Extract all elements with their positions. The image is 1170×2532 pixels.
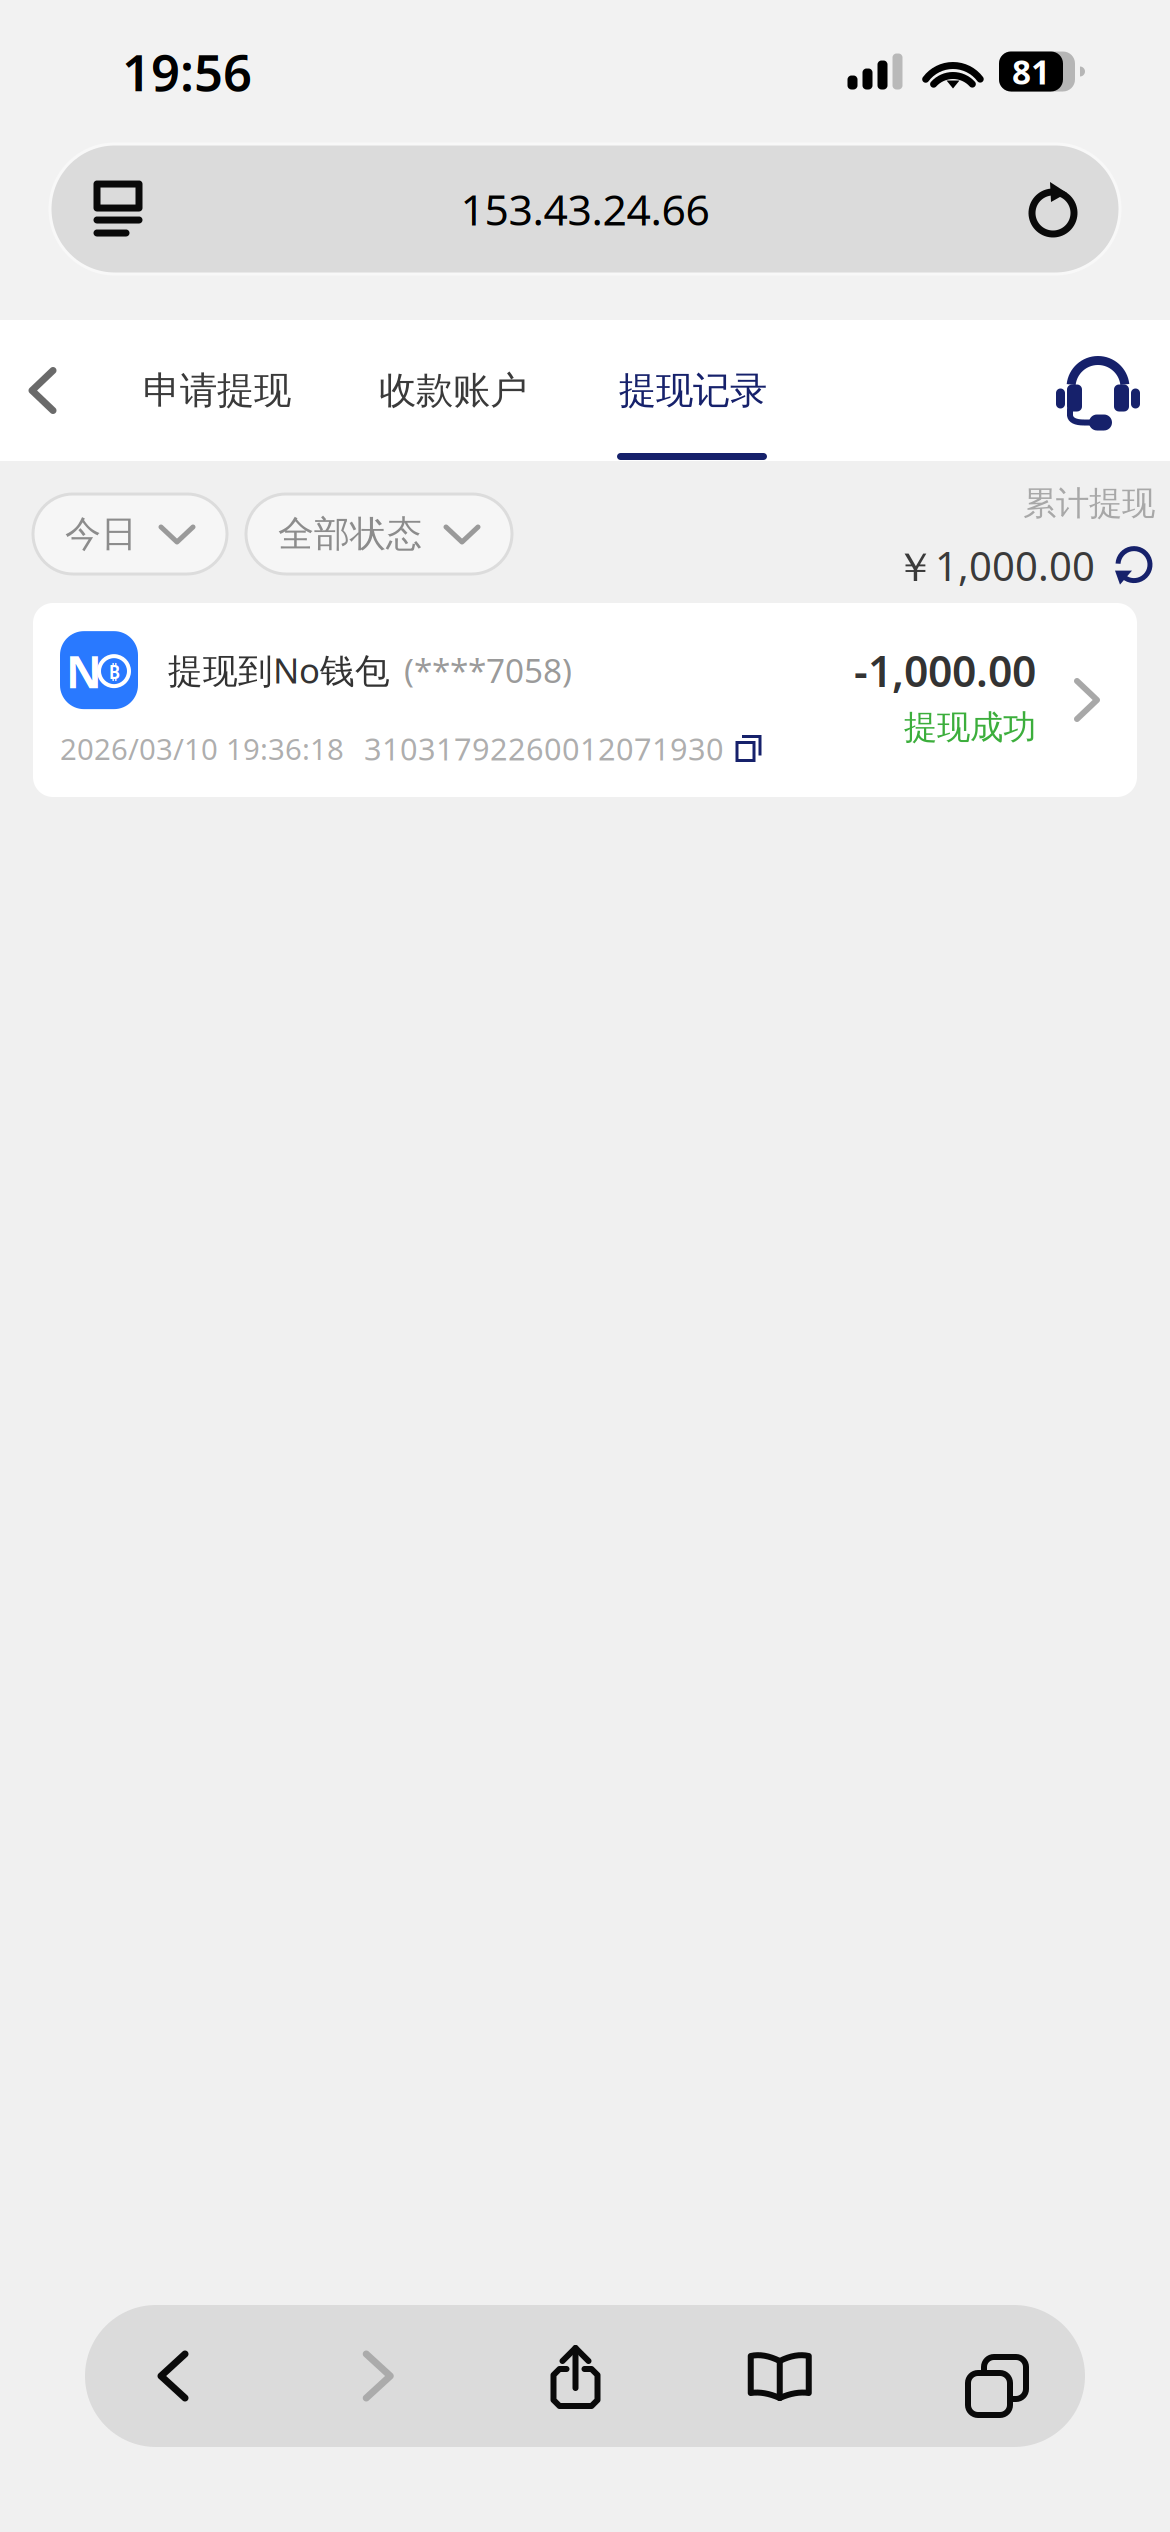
staticText: 申请提现 — [143, 368, 291, 413]
button[interactable]: Tabs — [956, 2345, 1018, 2407]
staticText: 收款账户 — [379, 368, 527, 413]
button[interactable]: Bookmarks — [745, 2348, 815, 2404]
button[interactable]: Back — [0, 321, 143, 459]
button[interactable]: 提现记录 — [619, 328, 767, 453]
staticText: 19:56 — [122, 38, 252, 105]
staticText: 31031792260012071930 — [364, 728, 724, 769]
button[interactable]: Address — [0, 144, 1170, 321]
staticText: 提现到No钱包 — [168, 647, 390, 693]
staticText: 2026/03/10 19:36:18 — [60, 729, 344, 768]
button[interactable]: 收款账户 — [379, 328, 527, 453]
staticText: 今日 — [65, 512, 137, 556]
staticText: 提现记录 — [619, 368, 767, 413]
button[interactable]: 全部状态 — [246, 494, 512, 574]
staticText: 81 — [1012, 49, 1050, 94]
staticText: -1,000.00 — [854, 642, 1036, 699]
staticText: ￥1,000.00 — [895, 539, 1095, 592]
button[interactable]: Back — [145, 2344, 205, 2408]
button[interactable]: Share — [547, 2343, 603, 2409]
button[interactable]: 今日 — [33, 494, 227, 574]
button[interactable]: 申请提现 — [143, 328, 291, 453]
button[interactable]: N — [0, 603, 1170, 797]
staticText: N — [66, 642, 102, 700]
staticText: (****7058) — [404, 648, 572, 692]
staticText: 累计提现 — [1023, 483, 1155, 524]
staticText: 153.43.24.66 — [460, 181, 709, 237]
staticText: ₿ — [108, 658, 119, 684]
staticText: 全部状态 — [278, 512, 422, 556]
staticText: 提现成功 — [904, 707, 1036, 748]
button[interactable]: Support — [1056, 351, 1170, 429]
button[interactable]: Forward — [346, 2344, 406, 2408]
button[interactable]: Refresh — [1113, 545, 1155, 587]
